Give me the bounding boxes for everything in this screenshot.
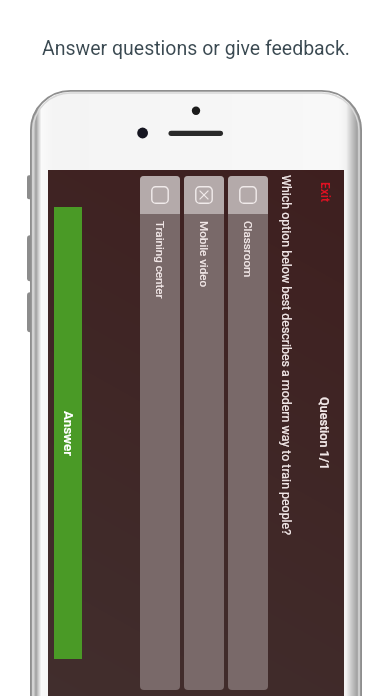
staticText: Answer questions or give feedback. (42, 37, 350, 60)
staticText: Mobile video (197, 221, 211, 288)
staticText: Question 1/1 (317, 397, 332, 470)
button[interactable]: Classroom (228, 176, 268, 690)
staticText: Exit (318, 182, 332, 203)
button[interactable]: Answer (54, 207, 82, 659)
button[interactable]: Training center (140, 176, 180, 690)
staticText: Classroom (241, 221, 255, 278)
staticText: Answer (60, 411, 76, 456)
button[interactable]: Exit (316, 178, 334, 207)
staticText: Which option below best describes a mode… (279, 175, 294, 536)
button[interactable]: Mobile video (184, 176, 224, 690)
staticText: Training center (153, 221, 167, 299)
